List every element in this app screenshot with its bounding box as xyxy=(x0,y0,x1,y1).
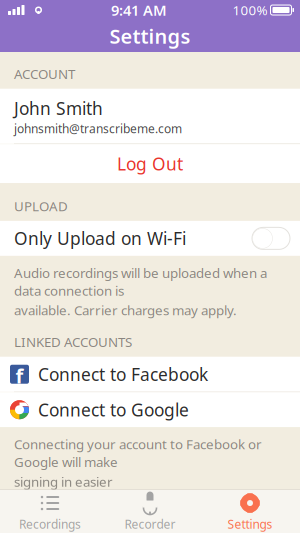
button[interactable]: Recordings xyxy=(0,487,100,533)
button[interactable]: Log Out xyxy=(0,144,300,183)
staticText: Settings xyxy=(227,516,272,532)
staticText: 100% xyxy=(232,1,267,19)
staticText: Connect to Google xyxy=(38,398,189,421)
staticText: Recorder xyxy=(124,516,175,532)
staticText: Connecting your account to Facebook or G… xyxy=(14,435,262,471)
staticText: 9:41 AM xyxy=(111,0,167,20)
button[interactable]: Visit Website xyxy=(0,524,300,533)
button[interactable]: Connect to Google xyxy=(0,392,300,427)
staticText: signing in easier xyxy=(14,473,113,490)
button[interactable]: f xyxy=(0,357,300,392)
staticText: UPLOAD xyxy=(14,197,68,215)
button[interactable]: John Smith xyxy=(0,89,300,144)
staticText: Audio recordings will be uploaded when a… xyxy=(14,264,267,299)
staticText: Connect to Facebook xyxy=(38,363,208,386)
staticText: Settings xyxy=(109,23,190,49)
staticText: John Smith xyxy=(14,97,103,120)
staticText: f xyxy=(15,362,23,389)
staticText: ACCOUNT xyxy=(14,65,75,83)
staticText: johnsmith@transcribeme.com xyxy=(14,121,182,137)
staticText: LINKED ACCOUNTS xyxy=(14,333,132,351)
staticText: SERVICE xyxy=(14,500,64,518)
staticText: Log Out xyxy=(117,152,183,175)
button[interactable]: Settings xyxy=(200,487,300,533)
staticText: Recordings xyxy=(19,516,81,532)
button[interactable]: Recorder xyxy=(100,487,200,533)
staticText: Only Upload on Wi-Fi xyxy=(14,227,186,250)
button[interactable]: Only Upload on Wi-Fi xyxy=(0,221,300,256)
staticText: available. Carrier charges may apply. xyxy=(14,301,237,319)
